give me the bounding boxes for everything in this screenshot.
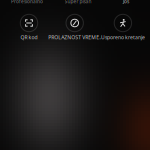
staticText: PROLAZNOST VREME.. [48, 34, 101, 41]
button[interactable]: QR kod [5, 3, 53, 51]
staticText: Još [123, 0, 129, 5]
staticText: QR kod [20, 34, 37, 41]
staticText: Profesionalno [11, 0, 43, 5]
staticText: Usporeno kretanje [101, 34, 145, 41]
staticText: Super pišan [64, 0, 91, 5]
button[interactable]: PROLAZNOST VREME.. [51, 3, 99, 51]
button[interactable]: Profesionalno [11, 0, 43, 5]
button[interactable]: Još [123, 0, 129, 5]
button[interactable]: Super pišan [64, 0, 91, 5]
button[interactable]: Usporeno kretanje [99, 3, 147, 51]
